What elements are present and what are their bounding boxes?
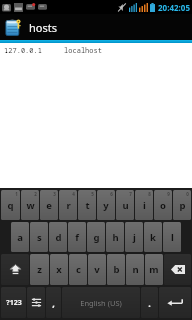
- button[interactable]: g: [87, 222, 105, 252]
- button[interactable]: h: [106, 222, 124, 252]
- staticText: 5: [91, 191, 94, 197]
- button[interactable]: English (US): [62, 287, 140, 318]
- staticText: 3: [53, 191, 56, 197]
- staticText: hosts: [29, 20, 57, 35]
- button[interactable]: j: [125, 222, 143, 252]
- staticText: ?123: [6, 298, 22, 308]
- other: hosts app icon: [4, 18, 23, 37]
- staticText: d: [55, 231, 62, 244]
- staticText: x: [56, 263, 62, 276]
- staticText: m: [149, 263, 159, 276]
- button[interactable]: c: [69, 254, 87, 285]
- button[interactable]: f: [68, 222, 86, 252]
- button[interactable]: z: [30, 254, 49, 285]
- button[interactable]: l: [163, 222, 181, 252]
- button[interactable]: Settings: [27, 287, 45, 318]
- button[interactable]: n: [126, 254, 144, 285]
- button[interactable]: hosts app icon: [0, 14, 192, 40]
- staticText: k: [150, 231, 156, 244]
- staticText: localhost: [64, 46, 102, 56]
- button[interactable]: b: [107, 254, 125, 285]
- staticText: 8: [148, 191, 151, 197]
- staticText: 127.0.0.1: [4, 46, 42, 56]
- button[interactable]: r: [59, 190, 77, 220]
- staticText: o: [160, 199, 166, 212]
- button[interactable]: m: [145, 254, 163, 285]
- button[interactable]: u: [116, 190, 134, 220]
- staticText: 2: [34, 191, 37, 197]
- staticText: l: [171, 231, 174, 244]
- staticText: f: [75, 231, 79, 244]
- button[interactable]: x: [50, 254, 68, 285]
- staticText: 7: [129, 191, 132, 197]
- button[interactable]: p: [173, 190, 191, 220]
- staticText: r: [66, 199, 71, 212]
- staticText: h: [112, 231, 119, 244]
- staticText: t: [85, 199, 90, 212]
- button[interactable]: t: [78, 190, 96, 220]
- staticText: ,: [52, 297, 55, 309]
- button[interactable]: Symbols: [1, 287, 26, 318]
- staticText: s: [37, 231, 42, 244]
- staticText: w: [26, 199, 35, 212]
- staticText: q: [7, 199, 14, 212]
- button[interactable]: i: [135, 190, 153, 220]
- staticText: j: [133, 231, 136, 244]
- staticText: e: [46, 199, 52, 212]
- staticText: b: [113, 263, 120, 276]
- staticText: u: [122, 199, 129, 212]
- staticText: g: [93, 231, 100, 244]
- button[interactable]: 127.0.0.1: [4, 46, 192, 56]
- staticText: 20:42:05: [158, 2, 190, 13]
- button[interactable]: e: [40, 190, 58, 220]
- button[interactable]: Delete: [164, 254, 191, 285]
- button[interactable]: o: [154, 190, 172, 220]
- button[interactable]: d: [49, 222, 67, 252]
- staticText: .: [148, 297, 151, 309]
- button[interactable]: a: [11, 222, 29, 252]
- staticText: n: [132, 263, 139, 276]
- staticText: i: [143, 199, 146, 212]
- staticText: 0: [186, 191, 189, 197]
- button[interactable]: Enter: [159, 287, 191, 318]
- button[interactable]: Shift: [1, 254, 29, 285]
- staticText: p: [179, 199, 186, 212]
- staticText: c: [76, 263, 81, 276]
- button[interactable]: k: [144, 222, 162, 252]
- button[interactable]: Period: [141, 287, 158, 318]
- staticText: 6: [110, 191, 113, 197]
- staticText: a: [17, 231, 23, 244]
- button[interactable]: q: [1, 190, 20, 220]
- staticText: 9: [167, 191, 170, 197]
- button[interactable]: w: [21, 190, 39, 220]
- button[interactable]: s: [30, 222, 48, 252]
- button[interactable]: y: [97, 190, 115, 220]
- staticText: y: [103, 199, 109, 212]
- staticText: 1: [15, 191, 18, 197]
- staticText: English (US): [80, 298, 122, 308]
- button[interactable]: v: [88, 254, 106, 285]
- staticText: z: [37, 263, 42, 276]
- button[interactable]: Comma: [46, 287, 61, 318]
- staticText: v: [94, 263, 100, 276]
- staticText: 4: [72, 191, 75, 197]
